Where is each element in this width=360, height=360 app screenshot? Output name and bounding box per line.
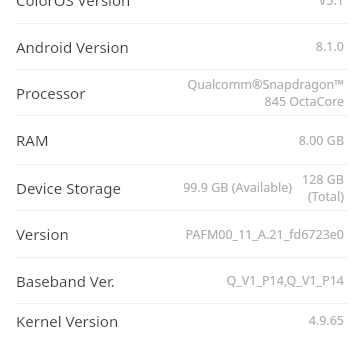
staticText: RAM <box>16 130 49 150</box>
staticText: Q_V1_P14,Q_V1_P14 <box>123 272 344 289</box>
staticText: Kernel Version <box>16 311 119 331</box>
staticText: ColorOS Version <box>16 0 131 10</box>
staticText: 8.1.0 <box>137 38 344 55</box>
button[interactable]: Baseband Ver. <box>0 258 360 303</box>
staticText: 128 GB <box>302 171 344 188</box>
button[interactable]: Device Storage <box>0 165 360 210</box>
button[interactable]: Processor <box>0 70 360 115</box>
staticText: 845 OctaCore <box>264 93 344 110</box>
button[interactable]: Version <box>0 211 360 257</box>
staticText: PAFM00_11_A.21_fd6723e0 <box>77 226 344 243</box>
button[interactable]: Kernel Version <box>0 304 360 337</box>
staticText: Qualcomm®Snapdragon™ <box>187 76 344 93</box>
staticText: Version <box>16 224 69 244</box>
staticText: Device Storage <box>16 178 121 198</box>
staticText: 4.9.65 <box>127 312 344 329</box>
staticText: 99.9 GB (Available) <box>183 179 292 196</box>
staticText: Android Version <box>16 37 129 57</box>
button[interactable]: Android Version <box>0 24 360 69</box>
staticText: Processor <box>16 83 86 103</box>
staticText: (Total) <box>308 188 344 205</box>
staticText: V5.1 <box>139 0 344 9</box>
button[interactable]: RAM <box>0 116 360 164</box>
staticText: 8.00 GB <box>57 132 344 149</box>
staticText: Baseband Ver. <box>16 271 115 291</box>
button[interactable]: ColorOS Version <box>0 0 360 23</box>
